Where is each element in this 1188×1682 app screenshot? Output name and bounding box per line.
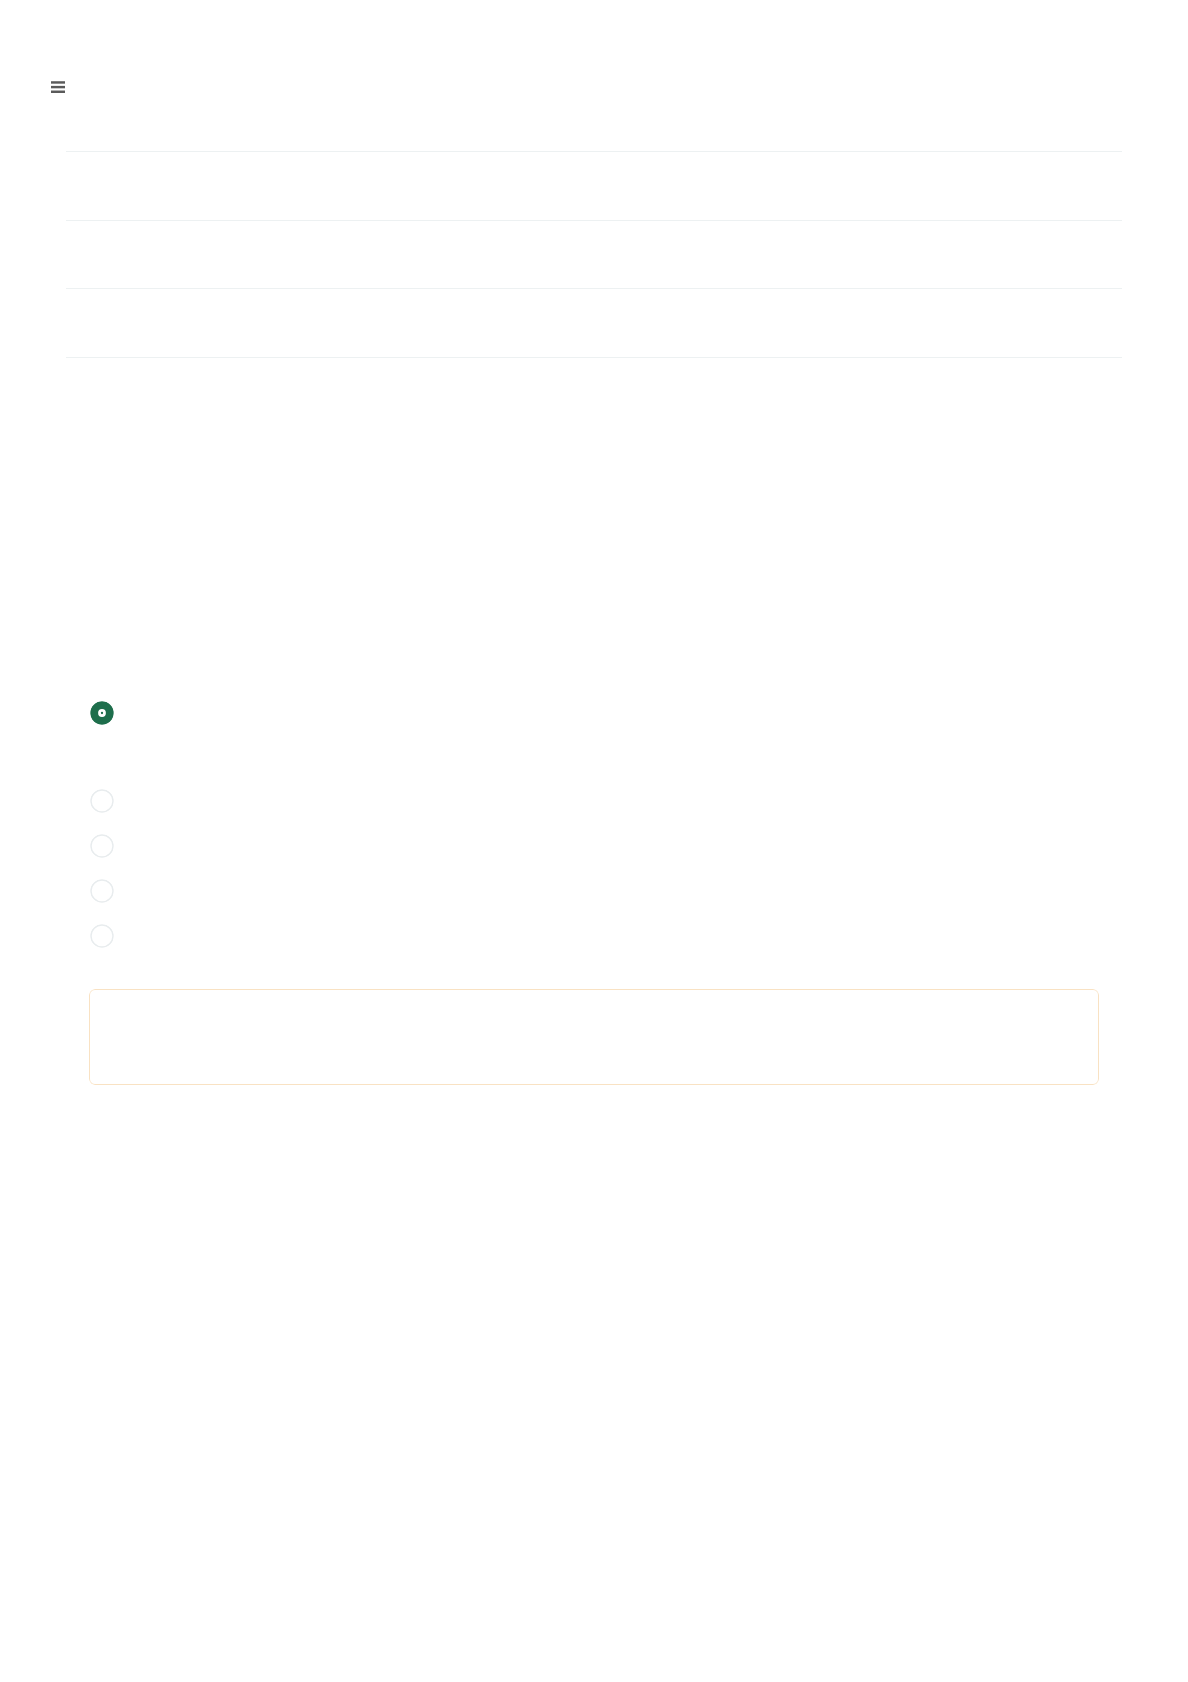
button[interactable]: Your answer text field [89,989,1099,1085]
button[interactable]: Answer option [90,789,114,813]
button[interactable]: Answer option [90,879,114,903]
button[interactable]: Open navigation menu [38,67,78,107]
button[interactable]: Selected answer option [90,701,114,725]
button[interactable]: Answer option [90,924,114,948]
button[interactable]: Answer option [90,834,114,858]
